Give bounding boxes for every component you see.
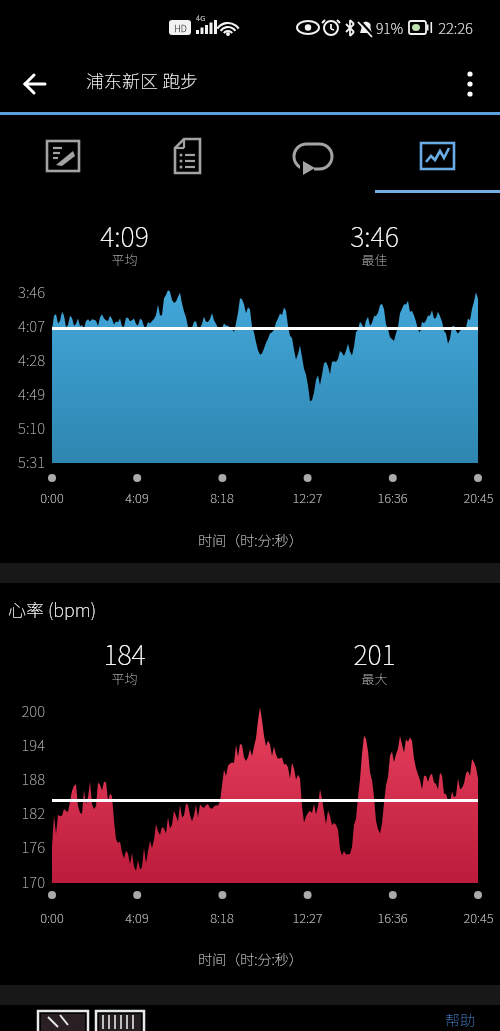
staticText: 176	[21, 836, 45, 856]
staticText: 91%	[376, 18, 403, 38]
staticText: 201	[353, 634, 396, 670]
staticText: 182	[21, 802, 45, 822]
staticText: 4:07	[18, 315, 45, 335]
staticText: 4:09	[125, 908, 149, 926]
button[interactable]	[0, 115, 125, 193]
staticText: 心率 (bpm)	[8, 596, 97, 620]
staticText: 184	[103, 634, 146, 670]
staticText: 22:26	[438, 17, 473, 39]
staticText: 平均	[111, 669, 138, 688]
staticText: 16:36	[377, 488, 408, 506]
staticText: HD	[174, 22, 187, 35]
staticText: 8:18	[210, 488, 234, 506]
button[interactable]	[8, 61, 60, 107]
staticText: 3:46	[350, 216, 399, 252]
staticText: 帮助	[445, 1009, 476, 1031]
button[interactable]: 帮助	[438, 1008, 482, 1031]
staticText: 最大	[361, 669, 388, 688]
staticText: 5:10	[18, 417, 45, 437]
staticText: 12:27	[292, 908, 323, 926]
staticText: 4:49	[18, 383, 45, 403]
staticText: 194	[21, 734, 45, 754]
staticText: 16:36	[377, 908, 408, 926]
button[interactable]	[250, 115, 375, 193]
staticText: 0:00	[40, 488, 64, 506]
staticText: 20:45	[463, 488, 494, 506]
staticText: 3:46	[18, 281, 45, 301]
staticText: 170	[21, 871, 45, 891]
staticText: 5:31	[18, 451, 45, 471]
staticText: 20:45	[463, 908, 494, 926]
staticText: 4:09	[125, 488, 149, 506]
staticText: 4:28	[18, 349, 45, 369]
staticText: 时间（时:分:秒）	[198, 949, 303, 967]
staticText: 平均	[111, 250, 138, 269]
button[interactable]	[375, 115, 500, 193]
staticText: 最佳	[361, 250, 388, 269]
staticText: 4G	[196, 12, 206, 22]
staticText: 浦东新区 跑步	[86, 67, 198, 93]
staticText: 200	[21, 700, 45, 720]
staticText: 4:09	[100, 216, 149, 252]
staticText: 188	[21, 768, 45, 788]
staticText: 8:18	[210, 908, 234, 926]
staticText: 0:00	[40, 908, 64, 926]
button[interactable]	[448, 61, 492, 107]
staticText: 12:27	[292, 488, 323, 506]
button[interactable]	[125, 115, 250, 193]
staticText: 时间（时:分:秒）	[198, 530, 303, 548]
